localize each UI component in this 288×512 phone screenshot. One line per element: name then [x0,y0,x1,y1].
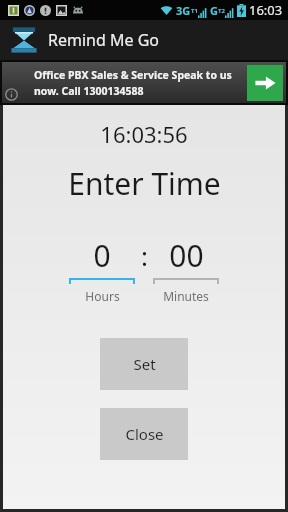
staticText: 0 [93,235,111,276]
staticText: T2 [218,7,225,15]
staticText: : [141,238,148,273]
staticText: 16:03 [249,1,283,19]
staticText: T1 [191,7,198,15]
button[interactable]: 0 [69,234,135,304]
button[interactable]: Set [100,338,188,390]
staticText: Close [125,424,164,444]
button[interactable]: Office PBX Sales & Service Speak to us [2,62,286,103]
staticText: Set [133,354,156,374]
staticText: 16:03:56 [100,119,188,149]
button[interactable]: Ad information [5,88,18,101]
staticText: Hours [85,288,120,304]
staticText: Office PBX Sales & Service Speak to us [34,68,232,82]
button[interactable]: 00 [153,234,219,304]
staticText: G [210,3,218,18]
staticText: Remind Me Go [48,29,159,51]
staticText: now. Call 1300134588 [34,84,144,98]
staticText: Enter Time [68,163,221,204]
staticText: 3G [176,3,191,18]
staticText: 00 [169,235,204,276]
button[interactable]: Remind Me Go [0,20,288,60]
button[interactable]: Go to advertiser [247,65,283,101]
button[interactable]: Close [100,408,188,460]
staticText: Minutes [163,288,209,304]
